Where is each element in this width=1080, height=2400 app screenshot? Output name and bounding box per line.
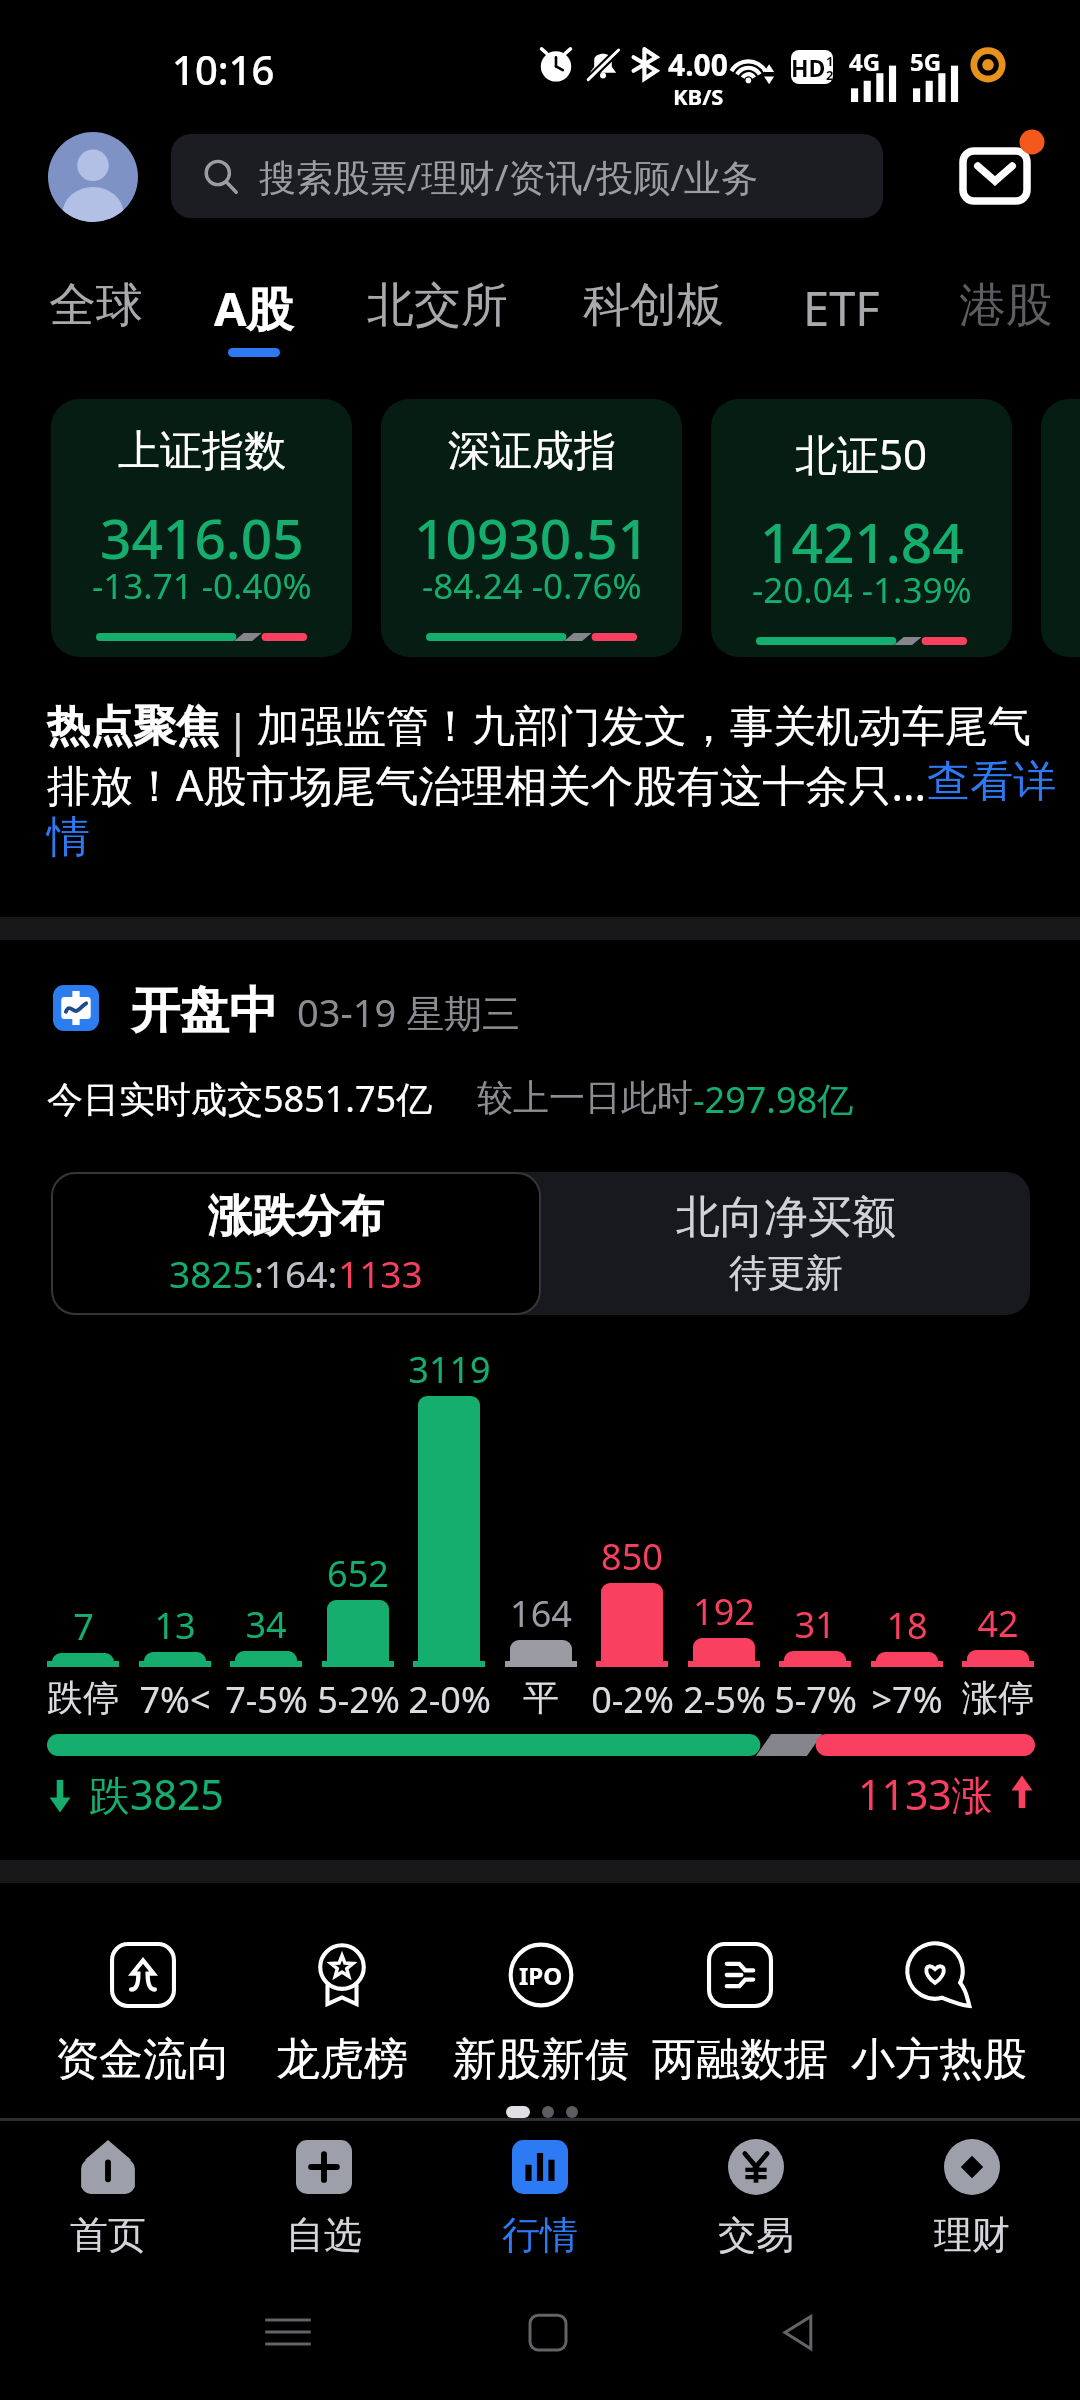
staticText: 2-0% bbox=[408, 1675, 491, 1724]
staticText: A股 bbox=[214, 276, 294, 340]
button[interactable]: 行情 bbox=[432, 2132, 648, 2282]
staticText: 652 bbox=[327, 1549, 389, 1598]
staticText: 首页 bbox=[70, 2211, 146, 2259]
staticText: 加强监管！九部门发文，事关机动车尾气 bbox=[257, 700, 1031, 754]
staticText: 龙虎榜 bbox=[276, 2032, 408, 2087]
button[interactable]: ETF bbox=[731, 276, 951, 360]
button[interactable]: 两融数据 bbox=[645, 1942, 835, 2102]
staticText: 理财 bbox=[934, 2211, 1010, 2259]
staticText: 5-2% bbox=[317, 1675, 400, 1724]
staticText: 4.00 bbox=[668, 44, 728, 85]
staticText: 待更新 bbox=[729, 1249, 843, 1297]
staticText: 31 bbox=[794, 1600, 836, 1649]
staticText: 10:16 bbox=[172, 42, 275, 96]
staticText: 1 bbox=[826, 52, 833, 70]
staticText: 热点聚焦 bbox=[47, 700, 219, 754]
button[interactable]: 涨跌分布 bbox=[53, 1174, 539, 1313]
button[interactable]: 深证成指 bbox=[381, 399, 682, 657]
staticText: 10930.51 bbox=[414, 500, 650, 575]
staticText: 1133 bbox=[338, 1248, 423, 1298]
staticText: KB/S bbox=[673, 81, 724, 111]
staticText: 科创板 bbox=[583, 276, 724, 335]
button[interactable]: Messages bbox=[950, 128, 1050, 228]
staticText: 北交所 bbox=[367, 276, 508, 335]
staticText: 港股 bbox=[959, 276, 1053, 335]
staticText: -84.24 -0.76% bbox=[422, 562, 642, 610]
button[interactable]: 首页 bbox=[0, 2132, 216, 2282]
staticText: 搜索股票/理财/资讯/投顾/业务 bbox=[259, 151, 759, 202]
staticText: 平 bbox=[523, 1675, 559, 1720]
staticText: -13.71 -0.40% bbox=[92, 562, 312, 610]
button[interactable]: 搜索股票/理财/资讯/投顾/业务 bbox=[171, 134, 883, 218]
staticText: 3119 bbox=[408, 1345, 491, 1394]
staticText: 行情 bbox=[502, 2211, 578, 2259]
button[interactable]: 资金流向 bbox=[48, 1942, 238, 2102]
button[interactable]: Profile bbox=[48, 132, 138, 222]
staticText: 4G bbox=[849, 45, 881, 78]
button[interactable]: A股 bbox=[144, 276, 364, 360]
staticText: :164: bbox=[254, 1248, 338, 1298]
staticText: 查看详 bbox=[927, 755, 1056, 809]
staticText: 192 bbox=[693, 1587, 755, 1636]
button[interactable]: 科创板 bbox=[543, 276, 763, 360]
staticText: 资金流向 bbox=[55, 2032, 231, 2087]
button[interactable]: 北向净买额 bbox=[541, 1172, 1030, 1315]
button[interactable]: 交易 bbox=[648, 2132, 864, 2282]
staticText: 上证指数 bbox=[118, 425, 286, 478]
staticText: 5G bbox=[910, 45, 942, 78]
staticText: 情 bbox=[47, 810, 90, 864]
staticText: 北证50 bbox=[795, 425, 928, 482]
button[interactable]: 北证50 bbox=[711, 399, 1012, 657]
staticText: | bbox=[226, 700, 250, 759]
staticText: 850 bbox=[601, 1532, 663, 1581]
staticText: HD bbox=[791, 52, 826, 83]
staticText: 18 bbox=[886, 1601, 928, 1650]
staticText: 03-19 星期三 bbox=[297, 986, 521, 1038]
staticText: 全球 bbox=[49, 276, 143, 335]
button[interactable]: 理财 bbox=[864, 2132, 1080, 2282]
staticText: 深证成指 bbox=[448, 425, 616, 478]
staticText: 2 bbox=[826, 66, 833, 82]
staticText: 42 bbox=[977, 1599, 1019, 1648]
staticText: 涨停 bbox=[962, 1675, 1034, 1720]
staticText: 3416.05 bbox=[100, 500, 304, 575]
staticText: 7 bbox=[73, 1602, 94, 1651]
staticText: 交易 bbox=[718, 2211, 794, 2259]
staticText: 1133涨 bbox=[858, 1766, 993, 1822]
button[interactable]: 全球 bbox=[0, 276, 206, 360]
staticText: 7-5% bbox=[225, 1675, 308, 1724]
staticText: 跌停 bbox=[47, 1675, 119, 1720]
staticText: 跌3825 bbox=[89, 1766, 224, 1822]
staticText: 自选 bbox=[286, 2211, 362, 2259]
button[interactable]: 港股 bbox=[896, 276, 1080, 360]
staticText: >7% bbox=[871, 1675, 943, 1724]
staticText: 5-7% bbox=[774, 1675, 857, 1724]
button[interactable]: IPO bbox=[446, 1942, 636, 2102]
staticText: 164 bbox=[510, 1589, 572, 1638]
button[interactable]: 自选 bbox=[216, 2132, 432, 2282]
staticText: 涨跌分布 bbox=[208, 1189, 384, 1244]
staticText: 7%< bbox=[139, 1675, 211, 1724]
staticText: 北向净买额 bbox=[676, 1190, 896, 1245]
staticText: -297.98亿 bbox=[693, 1075, 854, 1124]
staticText: -20.04 -1.39% bbox=[752, 566, 972, 614]
staticText: 0-2% bbox=[591, 1675, 674, 1724]
staticText: 两融数据 bbox=[652, 2032, 828, 2087]
staticText: 2-5% bbox=[683, 1675, 766, 1724]
button[interactable]: 上证指数 bbox=[51, 399, 352, 657]
staticText: 今日实时成交5851.75亿 bbox=[47, 1074, 433, 1123]
staticText: 1421.84 bbox=[760, 504, 964, 579]
staticText: 较上一日此时 bbox=[477, 1075, 693, 1120]
staticText: IPO bbox=[519, 1959, 563, 1992]
button[interactable]: 小方热股 bbox=[844, 1942, 1034, 2102]
button[interactable]: 北交所 bbox=[327, 276, 547, 360]
staticText: 排放！A股市场尾气治理相关个股有这十余只... bbox=[47, 755, 927, 814]
staticText: 3825 bbox=[169, 1248, 254, 1298]
staticText: 13 bbox=[154, 1601, 196, 1650]
staticText: 新股新债 bbox=[453, 2032, 629, 2087]
button[interactable]: 龙虎榜 bbox=[247, 1942, 437, 2102]
staticText: 开盘中 bbox=[131, 980, 278, 1042]
staticText: ETF bbox=[803, 276, 880, 340]
staticText: 34 bbox=[245, 1600, 287, 1649]
button[interactable]: 创业板指 bbox=[1041, 399, 1080, 657]
